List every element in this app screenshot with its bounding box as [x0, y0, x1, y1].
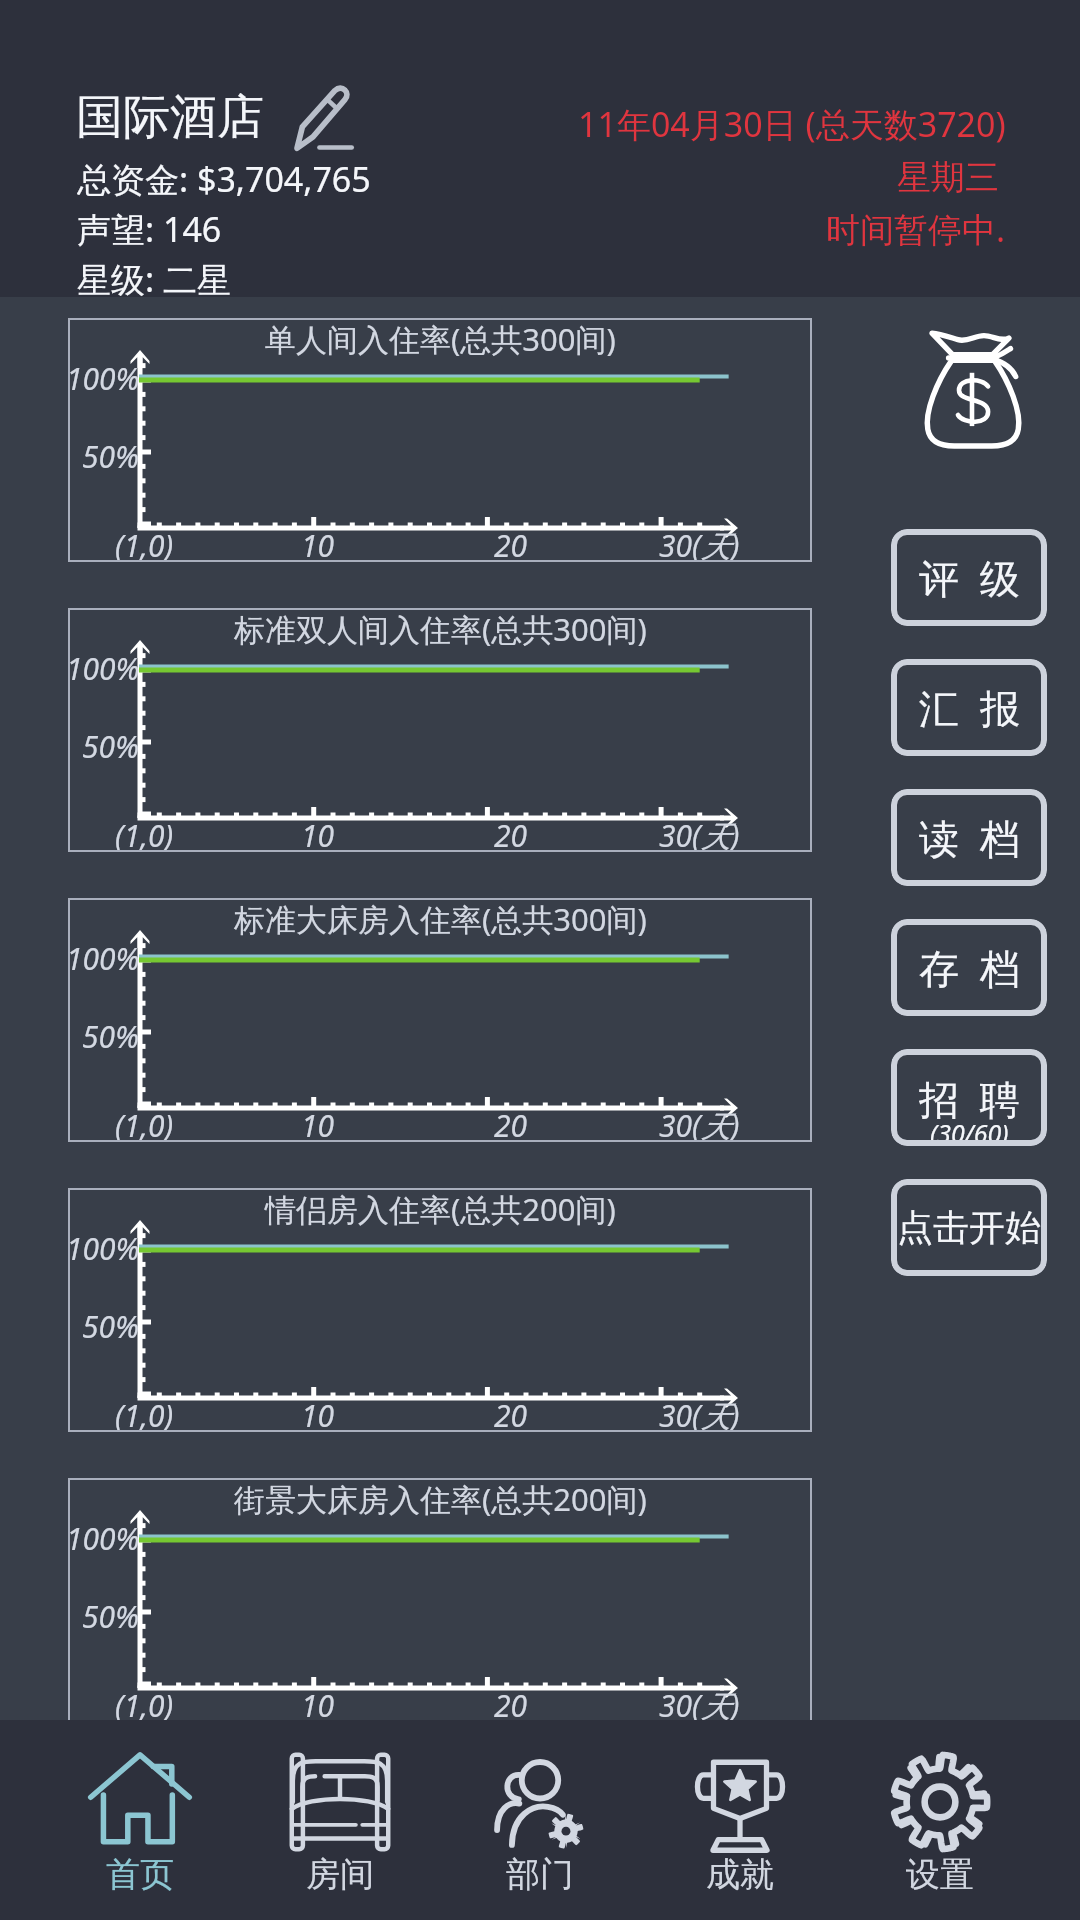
staticText: (30/60) — [930, 1116, 1009, 1146]
staticText: 存 档 — [919, 940, 1020, 995]
staticText: 总资金: $3,704,765 — [77, 156, 371, 202]
staticText: 房间 — [306, 1853, 374, 1896]
button[interactable]: 标准双人间入住率(总共300间) — [68, 608, 812, 852]
staticText: 50% — [82, 1306, 140, 1347]
button[interactable]: 读 档 — [891, 789, 1047, 886]
staticText: (1,0) — [115, 1685, 174, 1726]
staticText: 声望: 146 — [77, 206, 222, 252]
staticText: 30(天) — [659, 1105, 740, 1146]
staticText: 50% — [82, 726, 140, 767]
staticText: 读 档 — [919, 810, 1020, 865]
button[interactable]: 存 档 — [891, 919, 1047, 1016]
staticText: 100% — [66, 358, 140, 399]
staticText: 街景大床房入住率(总共200间) — [234, 1478, 647, 1520]
staticText: 设置 — [906, 1853, 974, 1896]
staticText: 30(天) — [659, 1685, 740, 1726]
staticText: 标准双人间入住率(总共300间) — [234, 608, 647, 650]
button[interactable]: 成就 — [640, 1720, 840, 1920]
staticText: 20 — [494, 1105, 528, 1146]
button[interactable]: 评 级 — [891, 529, 1047, 626]
staticText: 单人间入住率(总共300间) — [265, 318, 616, 360]
button[interactable]: 标准大床房入住率(总共300间) — [68, 898, 812, 1142]
staticText: 招 聘 — [919, 1071, 1020, 1126]
staticText: 30(天) — [659, 1395, 740, 1436]
staticText: 10 — [301, 1685, 335, 1726]
staticText: 50% — [82, 1016, 140, 1057]
staticText: (1,0) — [115, 1395, 174, 1436]
staticText: 30(天) — [659, 525, 740, 566]
staticText: 成就 — [706, 1853, 774, 1896]
staticText: 20 — [494, 1685, 528, 1726]
staticText: 20 — [494, 1395, 528, 1436]
staticText: 10 — [301, 815, 335, 856]
staticText: (1,0) — [115, 1105, 174, 1146]
staticText: 100% — [66, 938, 140, 979]
staticText: (1,0) — [115, 525, 174, 566]
staticText: 部门 — [506, 1853, 574, 1896]
staticText: 评 级 — [919, 550, 1020, 605]
button[interactable]: 首页 — [40, 1720, 240, 1920]
staticText: 11年04月30日 (总天数3720) — [578, 101, 1006, 147]
button[interactable]: 单人间入住率(总共300间) — [68, 318, 812, 562]
staticText: (1,0) — [115, 815, 174, 856]
button[interactable]: 点击开始 — [891, 1179, 1047, 1276]
staticText: 点击开始 — [897, 1205, 1041, 1250]
button[interactable]: 设置 — [840, 1720, 1040, 1920]
staticText: 10 — [301, 525, 335, 566]
staticText: 10 — [301, 1105, 335, 1146]
staticText: 国际酒店 — [76, 88, 264, 147]
staticText: 首页 — [106, 1853, 174, 1896]
staticText: 20 — [494, 525, 528, 566]
staticText: 100% — [66, 1518, 140, 1559]
staticText: 星级: 二星 — [77, 256, 231, 302]
staticText: 50% — [82, 1596, 140, 1637]
button[interactable]: 街景大床房入住率(总共200间) — [68, 1478, 812, 1722]
staticText: 星期三 — [897, 156, 999, 199]
button[interactable]: 房间 — [240, 1720, 440, 1920]
staticText: 情侣房入住率(总共200间) — [265, 1188, 616, 1230]
staticText: 30(天) — [659, 815, 740, 856]
staticText: 10 — [301, 1395, 335, 1436]
staticText: 100% — [66, 648, 140, 689]
staticText: 100% — [66, 1228, 140, 1269]
button[interactable]: 汇 报 — [891, 659, 1047, 756]
staticText: 20 — [494, 815, 528, 856]
button[interactable]: Money — [920, 330, 1024, 454]
staticText: 50% — [82, 436, 140, 477]
button[interactable]: Edit hotel name — [286, 84, 362, 160]
button[interactable]: 情侣房入住率(总共200间) — [68, 1188, 812, 1432]
button[interactable]: 部门 — [440, 1720, 640, 1920]
staticText: 标准大床房入住率(总共300间) — [234, 898, 647, 940]
staticText: 汇 报 — [919, 680, 1020, 735]
button[interactable]: 招 聘 — [891, 1049, 1047, 1146]
staticText: 时间暂停中. — [826, 206, 1006, 252]
